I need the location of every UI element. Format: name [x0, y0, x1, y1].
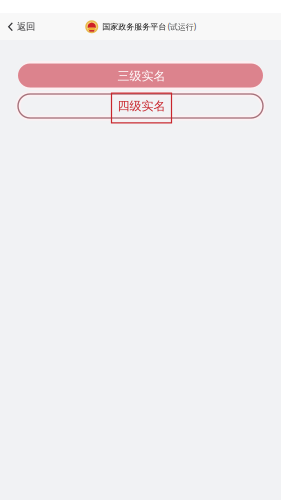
staticText: 四级实名	[117, 99, 165, 113]
staticText: (试运行)	[168, 21, 196, 32]
button[interactable]: 返回	[0, 15, 45, 38]
staticText: 国家政务服务平台	[102, 22, 166, 32]
button[interactable]: 四级实名	[18, 91, 263, 120]
staticText: 三级实名	[117, 69, 165, 83]
staticText: 返回	[17, 21, 35, 32]
button[interactable]: 三级实名	[18, 61, 263, 90]
